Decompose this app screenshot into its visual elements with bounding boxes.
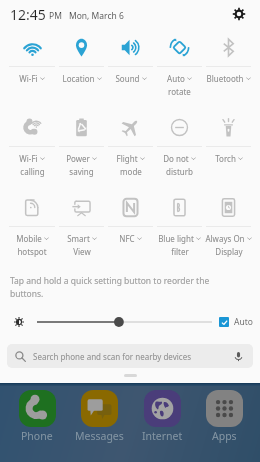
button[interactable]: Settings — [231, 6, 247, 22]
staticText: Mobile — [16, 233, 42, 244]
staticText: Auto — [167, 73, 185, 84]
staticText: Power — [66, 153, 90, 164]
staticText: Display — [215, 246, 243, 257]
button[interactable]: Flight — [106, 108, 155, 188]
staticText: Smart — [67, 233, 90, 244]
staticText: Search phone and scan for nearby devices — [33, 351, 191, 362]
button[interactable]: Auto — [219, 316, 253, 328]
button[interactable]: Location — [57, 28, 106, 108]
staticText: Torch — [215, 153, 236, 164]
staticText: Phone — [21, 429, 53, 443]
button[interactable]: Search phone and scan for nearby devices — [7, 344, 253, 368]
staticText: Bluetooth — [206, 73, 244, 84]
staticText: hotspot — [17, 246, 47, 257]
staticText: NFC — [119, 233, 135, 244]
staticText: View — [73, 246, 91, 257]
staticText: Always On — [205, 233, 245, 244]
staticText: mode — [120, 166, 142, 177]
button[interactable]: Blue light — [155, 188, 204, 268]
button[interactable]: Bluetooth — [204, 28, 253, 108]
button[interactable]: Mobile — [7, 188, 57, 268]
staticText: Blue light — [158, 233, 194, 244]
button[interactable] — [37, 315, 212, 329]
staticText: Mon, March 6 — [69, 10, 124, 22]
staticText: saving — [69, 166, 94, 177]
staticText: calling — [20, 166, 45, 177]
staticText: Apps — [212, 429, 237, 443]
button[interactable]: Wi-Fi — [7, 108, 57, 188]
button[interactable]: Apps — [198, 387, 250, 443]
button[interactable]: Do not — [155, 108, 204, 188]
other: Voice search — [233, 351, 244, 362]
staticText: Wi-Fi — [19, 73, 38, 84]
staticText: Internet — [142, 429, 183, 443]
staticText: Sound — [115, 73, 140, 84]
button[interactable]: Phone — [11, 387, 63, 443]
button[interactable]: Messages — [73, 387, 125, 443]
staticText: Do not — [163, 153, 189, 164]
button[interactable]: Always On — [204, 188, 253, 268]
button[interactable]: NFC — [106, 188, 155, 268]
staticText: Messages — [75, 429, 124, 443]
staticText: Location — [62, 73, 95, 84]
button[interactable]: Smart — [57, 188, 106, 268]
staticText: 12:45 — [10, 5, 46, 24]
button[interactable]: Power — [57, 108, 106, 188]
staticText: Tap and hold a quick setting button to r… — [10, 275, 244, 300]
staticText: Flight — [116, 153, 138, 164]
staticText: rotate — [168, 86, 191, 97]
staticText: Wi-Fi — [19, 153, 38, 164]
button[interactable]: Auto — [155, 28, 204, 108]
staticText: PM — [49, 10, 62, 22]
staticText: filter — [171, 246, 189, 257]
staticText: disturb — [166, 166, 193, 177]
staticText: Auto — [234, 316, 253, 328]
button[interactable]: Internet — [136, 387, 188, 443]
button[interactable]: Torch — [204, 108, 253, 188]
button[interactable]: Sound — [106, 28, 155, 108]
button[interactable]: Wi-Fi — [7, 28, 57, 108]
